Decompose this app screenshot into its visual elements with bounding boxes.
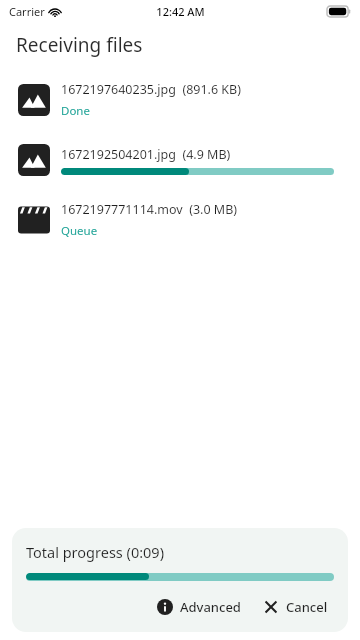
staticText: Receiving files xyxy=(16,32,143,58)
button[interactable]: 1672197771114.mov (3.0 MB) xyxy=(0,190,360,250)
staticText: Total progress (0:09) xyxy=(26,542,165,562)
staticText: Done xyxy=(61,103,90,119)
staticText: Cancel xyxy=(286,598,328,616)
other: Cancel xyxy=(263,599,279,615)
button[interactable]: 1672197640235.jpg (891.6 KB) xyxy=(0,70,360,130)
staticText: 12:42 AM xyxy=(156,4,205,19)
staticText: 1672197640235.jpg (891.6 KB) xyxy=(61,81,241,98)
staticText: Carrier xyxy=(9,4,45,19)
staticText: Advanced xyxy=(180,598,241,616)
staticText: 1672197771114.mov (3.0 MB) xyxy=(61,201,238,218)
button[interactable]: 1672192504201.jpg (4.9 MB) xyxy=(0,130,360,190)
staticText: 1672192504201.jpg (4.9 MB) xyxy=(61,146,231,163)
button[interactable]: Cancel xyxy=(257,594,334,620)
other: Advanced info xyxy=(157,599,173,615)
staticText: Queue xyxy=(61,223,98,239)
button[interactable]: Advanced info xyxy=(151,594,247,620)
